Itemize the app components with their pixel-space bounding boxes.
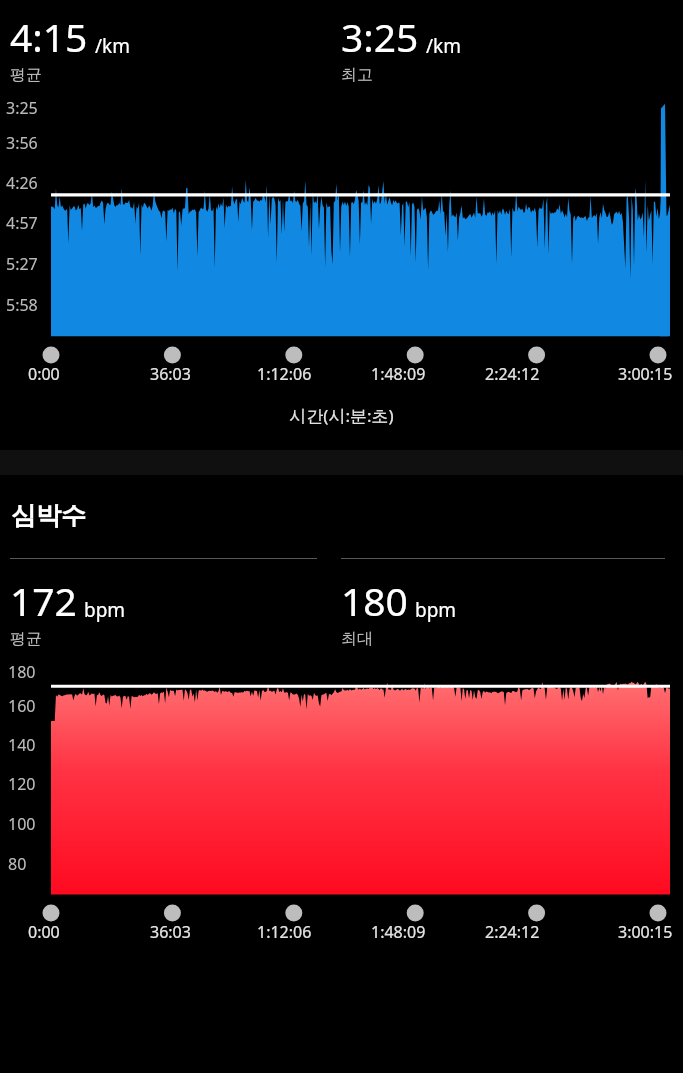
staticText: 100	[8, 813, 36, 835]
button[interactable]: 4:15	[10, 10, 341, 85]
staticText: 2:24:12	[485, 921, 540, 943]
button[interactable]: 180	[341, 574, 683, 649]
staticText: 1:12:06	[257, 363, 312, 385]
staticText: 4:15	[10, 10, 88, 63]
staticText: 180	[8, 661, 36, 683]
staticText: 심박수	[11, 500, 86, 531]
staticText: 160	[8, 695, 36, 717]
staticText: 2:24:12	[485, 363, 540, 385]
staticText: 1:12:06	[257, 921, 312, 943]
staticText: 4:57	[6, 212, 38, 234]
staticText: 3:56	[6, 132, 38, 154]
staticText: bpm	[415, 597, 457, 623]
staticText: 3:25	[6, 97, 38, 119]
staticText: 평균	[10, 629, 42, 649]
staticText: 172	[10, 574, 77, 627]
staticText: 140	[8, 734, 36, 756]
button[interactable]: 3:25	[341, 10, 683, 85]
staticText: /km	[95, 33, 130, 59]
staticText: 3:00:15	[618, 921, 673, 943]
staticText: 5:27	[6, 253, 38, 275]
staticText: 1:48:09	[371, 363, 426, 385]
staticText: 최고	[341, 65, 373, 85]
staticText: 120	[8, 773, 36, 795]
staticText: 5:58	[6, 294, 38, 316]
button[interactable]: 172	[10, 574, 341, 649]
staticText: 3:00:15	[618, 363, 673, 385]
staticText: 180	[341, 574, 408, 627]
staticText: /km	[426, 33, 461, 59]
staticText: 3:25	[341, 10, 419, 63]
staticText: 1:48:09	[371, 921, 426, 943]
staticText: 36:03	[150, 363, 191, 385]
staticText: 80	[8, 853, 27, 875]
staticText: 36:03	[150, 921, 191, 943]
staticText: 시간(시:분:초)	[0, 404, 683, 427]
staticText: 4:26	[6, 172, 38, 194]
staticText: 평균	[10, 65, 42, 85]
staticText: 0:00	[28, 921, 60, 943]
staticText: 0:00	[28, 363, 60, 385]
staticText: 최대	[341, 629, 373, 649]
staticText: bpm	[84, 597, 126, 623]
